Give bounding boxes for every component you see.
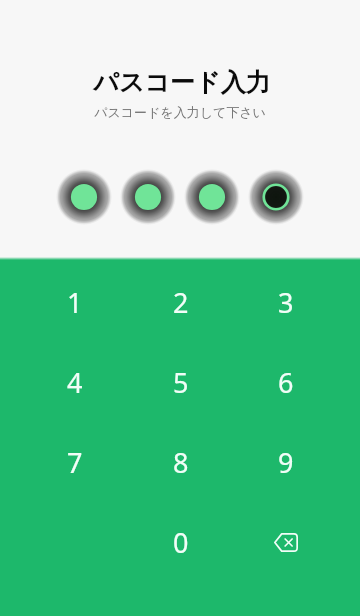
button[interactable]: Delete xyxy=(233,502,339,582)
staticText: 4 xyxy=(67,364,83,401)
staticText: 7 xyxy=(67,444,83,481)
button[interactable]: 8 xyxy=(128,422,234,502)
other: Digit entered xyxy=(182,167,242,227)
button[interactable]: 4 xyxy=(22,342,128,422)
other: Digit entered xyxy=(54,167,114,227)
other: Digit empty xyxy=(246,167,306,227)
staticText: 0 xyxy=(173,524,189,561)
button[interactable]: 1 xyxy=(22,262,128,342)
staticText: 9 xyxy=(278,444,294,481)
staticText: 3 xyxy=(278,284,294,321)
staticText: パスコードを入力して下さい xyxy=(94,104,266,120)
staticText: 2 xyxy=(173,284,189,321)
staticText: 8 xyxy=(173,444,189,481)
staticText: 1 xyxy=(67,284,83,321)
button[interactable]: 7 xyxy=(22,422,128,502)
other: Digit entered xyxy=(118,167,178,227)
button[interactable]: 2 xyxy=(128,262,234,342)
button[interactable]: 0 xyxy=(128,502,234,582)
staticText: 5 xyxy=(173,364,189,401)
button[interactable]: 6 xyxy=(233,342,339,422)
button[interactable]: 3 xyxy=(233,262,339,342)
staticText: 6 xyxy=(278,364,294,401)
button[interactable]: 5 xyxy=(128,342,234,422)
staticText: パスコード入力 xyxy=(93,67,271,98)
button[interactable]: 9 xyxy=(233,422,339,502)
